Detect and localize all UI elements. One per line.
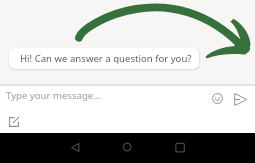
button[interactable]: Hi! Can we answer a question for you? bbox=[9, 48, 199, 69]
button[interactable]: Back bbox=[60, 133, 92, 163]
button[interactable]: Home bbox=[111, 133, 143, 163]
button[interactable]: Open in new window bbox=[5, 113, 23, 131]
button[interactable]: Send message bbox=[228, 87, 253, 112]
button[interactable]: Type your message... bbox=[6, 89, 101, 102]
button[interactable]: Recent apps bbox=[164, 133, 196, 163]
button[interactable]: Insert emoji bbox=[206, 87, 229, 110]
staticText: Hi! Can we answer a question for you? bbox=[20, 52, 192, 65]
